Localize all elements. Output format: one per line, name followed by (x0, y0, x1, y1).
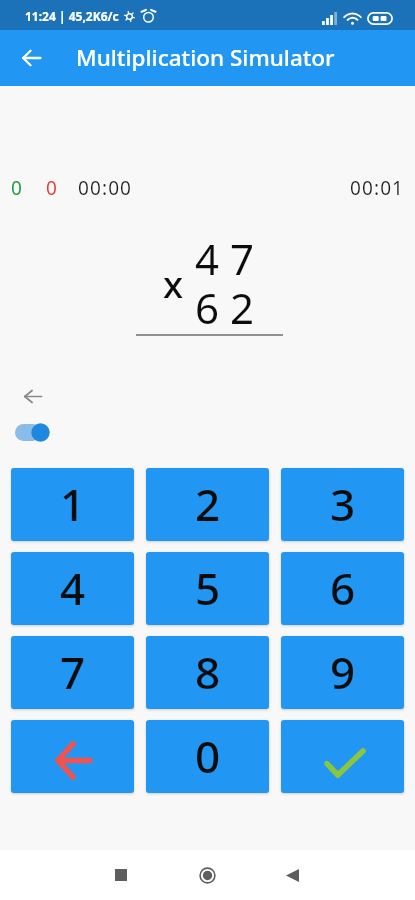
staticText: 0 (46, 175, 57, 199)
staticText: 2 (195, 474, 221, 534)
staticText: Multiplication Simulator (76, 42, 335, 73)
button[interactable]: 1 (11, 468, 134, 541)
button[interactable]: 6 (281, 552, 404, 625)
button[interactable]: 0 (146, 720, 269, 793)
button[interactable]: 8 (146, 636, 269, 709)
button[interactable]: 2 (146, 468, 269, 541)
staticText: 4 7 (195, 230, 254, 287)
staticText: 5 (195, 558, 221, 618)
staticText: 8 (195, 642, 221, 702)
staticText: 00:00 (78, 175, 133, 199)
button[interactable]: Toggle mode (13, 415, 55, 439)
staticText: 4 (60, 558, 86, 618)
button[interactable]: Home (176, 850, 238, 900)
button[interactable]: Backspace (11, 720, 134, 793)
staticText: 9 (330, 642, 356, 702)
staticText: 0 (11, 175, 22, 199)
staticText: 3 (330, 474, 356, 534)
button[interactable]: Back (261, 850, 323, 900)
staticText: 6 2 (195, 279, 254, 336)
staticText: 0 (195, 726, 221, 786)
button[interactable]: 5 (146, 552, 269, 625)
button[interactable]: Back (7, 34, 55, 82)
staticText: 7 (60, 642, 86, 702)
button[interactable]: Confirm (281, 720, 404, 793)
button[interactable]: 7 (11, 636, 134, 709)
staticText: 11:24 | 45,2K6/c (25, 8, 119, 24)
button[interactable]: Previous step (21, 387, 45, 405)
button[interactable]: 9 (281, 636, 404, 709)
button[interactable]: 4 (11, 552, 134, 625)
button[interactable]: 3 (281, 468, 404, 541)
staticText: 00:01 (350, 175, 405, 199)
staticText: 1 (60, 474, 86, 534)
staticText: x (163, 258, 184, 308)
button[interactable]: Recents (90, 850, 152, 900)
staticText: 6 (330, 558, 356, 618)
